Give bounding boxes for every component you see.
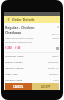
button[interactable]: Payment Mode — [5, 77, 59, 83]
button[interactable]: Order Type — [5, 71, 59, 77]
staticText: ₹ 240 — [5, 46, 12, 50]
button[interactable]: Back — [4, 16, 12, 23]
staticText: Regular - Chicken Chatkaaa — [5, 25, 35, 35]
button[interactable]: Customer Name — [5, 53, 59, 59]
staticText: Delivery — [49, 72, 59, 75]
button[interactable]: Delivery Address — [5, 65, 59, 71]
staticText: Order Type — [5, 72, 18, 75]
staticText: Rahul — [52, 54, 59, 57]
staticText: Customer Name — [5, 54, 24, 57]
staticText: Cash — [53, 78, 59, 81]
staticText: Payment Mode — [5, 78, 22, 81]
staticText: Sector 12 — [48, 66, 59, 69]
staticText: CANCEL — [13, 85, 24, 89]
staticText: ₹ 40 — [15, 46, 21, 50]
staticText: Lorem ipsum dolor sit amet consectetur a… — [5, 37, 34, 43]
staticText: Delivery Address — [5, 66, 24, 69]
staticText: ACCEPT — [41, 85, 51, 89]
button[interactable]: CANCEL — [5, 83, 32, 90]
staticText: Mobile Number — [5, 60, 23, 63]
staticText: 98xxxxxx — [48, 60, 59, 63]
staticText: Order Details — [12, 17, 35, 22]
staticText: qty 1 x 240.00 — [46, 33, 59, 39]
button[interactable]: ACCEPT — [32, 83, 59, 90]
button[interactable]: Mobile Number — [5, 59, 59, 65]
